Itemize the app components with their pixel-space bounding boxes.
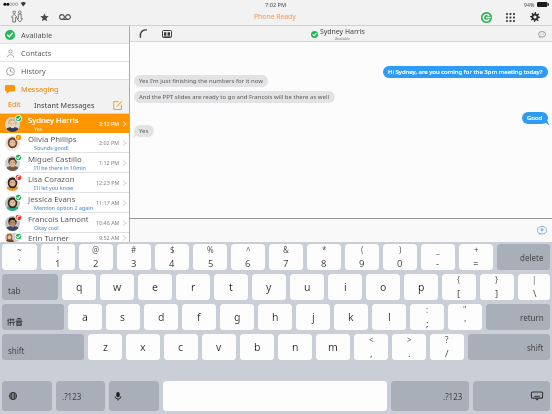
staticText: 11:17 AM: [96, 199, 120, 206]
button[interactable]: Available: [0, 26, 129, 43]
button[interactable]: [2, 304, 64, 330]
button[interactable]: ^: [231, 244, 265, 270]
button[interactable]: delete: [497, 244, 550, 270]
button[interactable]: _: [421, 244, 455, 270]
staticText: k: [348, 310, 354, 324]
button[interactable]: b: [240, 334, 274, 360]
button[interactable]: l: [372, 304, 406, 330]
button[interactable]: [2, 381, 52, 411]
button[interactable]: y: [252, 274, 286, 300]
button[interactable]: {: [442, 274, 476, 300]
button[interactable]: x: [126, 334, 160, 360]
button[interactable]: Send message: [535, 224, 548, 237]
button[interactable]: p: [404, 274, 438, 300]
button[interactable]: Lisa Corazon: [0, 173, 129, 192]
button[interactable]: &: [269, 244, 303, 270]
button[interactable]: ": [448, 304, 482, 330]
button[interactable]: w: [100, 274, 134, 300]
staticText: y: [266, 280, 272, 294]
button[interactable]: Favorites: [35, 9, 53, 25]
button[interactable]: .?123: [391, 381, 469, 411]
button[interactable]: *: [307, 244, 341, 270]
button[interactable]: >: [392, 334, 426, 360]
button[interactable]: Video call: [159, 26, 175, 41]
button[interactable]: j: [296, 304, 330, 330]
button[interactable]: g: [220, 304, 254, 330]
button[interactable]: Edit: [0, 97, 28, 113]
button[interactable]: k: [334, 304, 368, 330]
button[interactable]: History: [0, 62, 129, 79]
staticText: History: [21, 66, 46, 76]
button[interactable]: $: [155, 244, 189, 270]
button[interactable]: Connect: [477, 9, 495, 25]
staticText: ,: [370, 347, 373, 360]
button[interactable]: shift: [468, 334, 550, 360]
staticText: &: [283, 244, 289, 255]
button[interactable]: Sydney Harris: [0, 114, 129, 133]
button[interactable]: s: [106, 304, 140, 330]
staticText: 8: [321, 257, 327, 270]
button[interactable]: tab: [2, 274, 58, 300]
button[interactable]: ): [383, 244, 417, 270]
button[interactable]: z: [88, 334, 122, 360]
button[interactable]: c: [164, 334, 198, 360]
staticText: Available: [21, 30, 53, 40]
button[interactable]: return: [486, 304, 550, 330]
button[interactable]: ?: [430, 334, 464, 360]
button[interactable]: !: [41, 244, 75, 270]
button[interactable]: .?123: [56, 381, 105, 411]
button[interactable]: f: [182, 304, 216, 330]
button[interactable]: Miguel Castillo: [0, 153, 129, 172]
button[interactable]: %: [193, 244, 227, 270]
button[interactable]: shift: [2, 334, 84, 360]
button[interactable]: o: [366, 274, 400, 300]
button[interactable]: i: [328, 274, 362, 300]
button[interactable]: Voicemail: [56, 9, 74, 25]
staticText: d: [158, 310, 165, 324]
button[interactable]: <: [354, 334, 388, 360]
button[interactable]: ~: [2, 244, 37, 270]
staticText: =: [473, 257, 479, 270]
button[interactable]: m: [316, 334, 350, 360]
button[interactable]: Contacts: [7, 9, 27, 25]
button[interactable]: Contacts: [0, 44, 129, 61]
button[interactable]: [473, 381, 550, 411]
button[interactable]: }: [480, 274, 514, 300]
button[interactable]: a: [68, 304, 102, 330]
button[interactable]: Francois Lamont: [0, 213, 129, 232]
button[interactable]: v: [202, 334, 236, 360]
button[interactable]: Settings: [526, 9, 544, 25]
button[interactable]: u: [290, 274, 324, 300]
button[interactable]: Conversation details: [536, 28, 548, 40]
button[interactable]: |: [518, 274, 550, 300]
button[interactable]: e: [138, 274, 172, 300]
button[interactable]: r: [176, 274, 210, 300]
staticText: return: [520, 312, 544, 323]
button[interactable]: n: [278, 334, 312, 360]
button[interactable]: Olivia Phillips: [0, 133, 129, 152]
staticText: +: [474, 244, 479, 255]
button[interactable]: +: [459, 244, 493, 270]
button[interactable]: Erin Turner: [0, 233, 129, 242]
staticText: 2:02 PM: [99, 139, 120, 146]
button[interactable]: @: [79, 244, 113, 270]
button[interactable]: Compose: [111, 99, 124, 112]
staticText: 7:02 PM: [265, 1, 287, 9]
button[interactable]: Messaging: [0, 80, 129, 97]
staticText: `: [18, 257, 21, 270]
button[interactable]: #: [117, 244, 151, 270]
staticText: j: [312, 310, 315, 324]
button[interactable]: :: [410, 304, 444, 330]
button[interactable]: t: [214, 274, 248, 300]
button[interactable]: q: [62, 274, 96, 300]
button[interactable]: Keypad: [501, 9, 519, 25]
button[interactable]: Jessica Evans: [0, 193, 129, 212]
button[interactable]: [109, 381, 159, 411]
staticText: f: [197, 310, 201, 324]
button[interactable]: (: [345, 244, 379, 270]
button[interactable]: Call: [135, 26, 151, 41]
button[interactable]: h: [258, 304, 292, 330]
button[interactable]: d: [144, 304, 178, 330]
staticText: s: [120, 310, 126, 324]
